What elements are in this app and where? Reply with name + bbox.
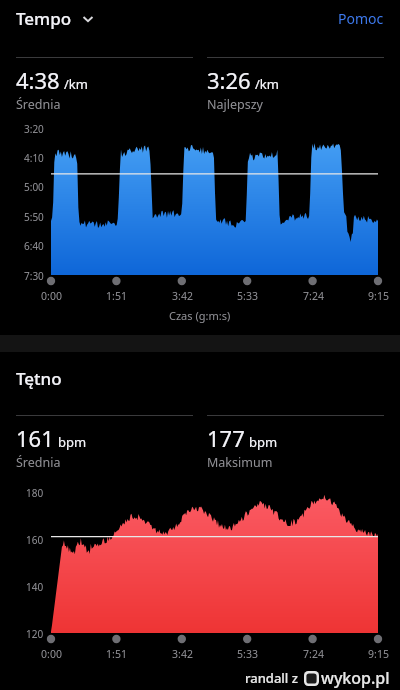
staticText: 5:33	[237, 289, 258, 303]
staticText: 140	[26, 580, 44, 594]
staticText: 161	[16, 423, 54, 453]
staticText: 6:40	[24, 239, 44, 253]
staticText: 3:20	[24, 122, 44, 136]
staticText: bpm	[249, 433, 278, 451]
staticText: bpm	[58, 433, 87, 451]
staticText: Tętno	[16, 367, 62, 390]
staticText: randall z	[245, 669, 298, 687]
staticText: 4:38	[16, 65, 60, 95]
staticText: Czas (g:m:s)	[169, 308, 231, 323]
other: Rozwiń	[81, 12, 95, 26]
button[interactable]: Pomoc	[338, 9, 384, 28]
button[interactable]: 4:38	[16, 57, 193, 113]
staticText: 180	[26, 486, 44, 500]
button[interactable]: 177	[207, 415, 384, 471]
staticText: Maksimum	[207, 454, 273, 471]
staticText: Tempo	[16, 7, 72, 30]
staticText: 1:51	[106, 647, 127, 661]
staticText: Najlepszy	[207, 96, 263, 113]
staticText: wykop.pl	[321, 667, 390, 689]
button[interactable]: 161	[16, 415, 193, 471]
staticText: /km	[64, 75, 88, 93]
staticText: 160	[26, 533, 44, 547]
staticText: 0:00	[41, 289, 62, 303]
button[interactable]: 3:26	[207, 57, 384, 113]
staticText: 5:00	[24, 180, 44, 194]
staticText: 177	[207, 423, 245, 453]
staticText: 3:42	[172, 647, 193, 661]
staticText: 7:24	[303, 647, 324, 661]
staticText: 5:33	[237, 647, 258, 661]
staticText: 1:51	[106, 289, 127, 303]
staticText: 9:15	[368, 647, 389, 661]
staticText: Średnia	[16, 96, 61, 113]
staticText: 120	[26, 627, 44, 641]
staticText: Średnia	[16, 454, 61, 471]
staticText: 9:15	[368, 289, 389, 303]
staticText: 0:00	[41, 647, 62, 661]
staticText: 5:50	[24, 210, 44, 224]
staticText: 3:42	[172, 289, 193, 303]
staticText: /km	[255, 75, 279, 93]
staticText: Pomoc	[338, 9, 384, 28]
staticText: 7:30	[24, 269, 44, 283]
staticText: 3:26	[207, 65, 251, 95]
staticText: 4:10	[24, 151, 44, 165]
staticText: 7:24	[303, 289, 324, 303]
button[interactable]: Tempo	[16, 7, 95, 30]
